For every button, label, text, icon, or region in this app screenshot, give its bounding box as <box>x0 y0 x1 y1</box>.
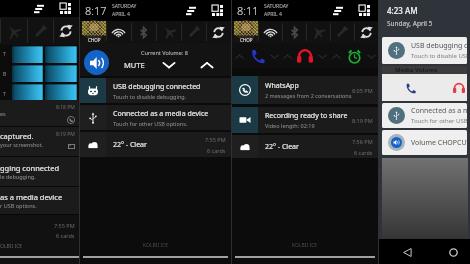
button[interactable]: 22° - Clear <box>80 132 231 157</box>
button[interactable] <box>45 46 77 63</box>
staticText: 7:55 PM <box>54 222 75 229</box>
staticText: USB debugging conn <box>411 41 467 51</box>
button[interactable]: 22° - Clear <box>232 135 378 158</box>
staticText: 7:56 PM <box>352 138 373 145</box>
staticText: r USB options. <box>0 202 37 209</box>
button[interactable]: Sliders <box>182 2 199 19</box>
staticText: your screenshot. <box>0 141 44 148</box>
staticText: as a media device <box>0 192 63 202</box>
staticText: USB debugging connected <box>113 82 201 92</box>
staticText: 8:05 PM <box>352 87 373 94</box>
staticText: Volume CHOPCUT!! <box>411 138 467 148</box>
staticText: OLBII ICE <box>0 243 23 250</box>
button[interactable]: Alarm volume down <box>365 49 378 63</box>
staticText: SATURDAY <box>264 3 289 10</box>
staticText: WhatsApp <box>265 81 299 91</box>
staticText: gging connected <box>0 163 60 173</box>
staticText: APRIL 4 <box>264 11 282 18</box>
staticText: CHOP <box>240 37 253 43</box>
staticText: Touch for other USB options. <box>113 120 188 127</box>
staticText: 4:23 AM <box>387 5 418 16</box>
staticText: MUTE <box>124 60 145 70</box>
button[interactable]: Alarm volume up <box>329 49 343 63</box>
button[interactable]: User profile <box>234 21 258 43</box>
staticText: Touch to disable USB de <box>411 52 467 60</box>
button[interactable]: Quick settings <box>209 2 226 19</box>
button[interactable]: Bluetooth <box>131 21 156 43</box>
button[interactable]: Volume up <box>198 56 216 74</box>
staticText: Touch for other USB opt <box>411 117 467 125</box>
button[interactable]: Headset volume <box>450 79 467 97</box>
button[interactable]: Quick settings <box>356 2 373 19</box>
button[interactable]: captured. <box>0 127 79 157</box>
button[interactable] <box>12 84 43 100</box>
button[interactable]: Sync <box>206 21 231 43</box>
button[interactable]: Connected as a medi <box>382 103 467 128</box>
button[interactable] <box>12 46 43 63</box>
staticText: Connected as a media device <box>113 109 209 119</box>
button[interactable]: Call volume <box>401 79 419 97</box>
button[interactable]: WhatsApp <box>232 76 378 104</box>
staticText: 6 cards <box>354 149 373 156</box>
button[interactable] <box>45 65 77 82</box>
staticText: Touch to disable debugging. <box>113 93 187 100</box>
staticText: CHOP <box>88 37 101 43</box>
staticText: Recording ready to share <box>265 111 348 121</box>
button[interactable]: Headset volume down <box>316 49 329 63</box>
button[interactable]: Sync <box>354 21 378 43</box>
staticText: Video length: 02:19 <box>265 122 315 129</box>
button[interactable]: Quick settings <box>57 0 74 17</box>
button[interactable]: Recording ready to share <box>232 107 378 133</box>
button[interactable] <box>12 65 43 82</box>
button[interactable]: Wi-Fi <box>106 21 131 43</box>
staticText: Connected as a medi <box>411 106 467 116</box>
button[interactable]: Volume <box>84 50 109 75</box>
button[interactable]: 8:18 PM <box>0 100 79 127</box>
staticText: Sunday, April 5 <box>387 19 433 28</box>
staticText: 8:18 PM <box>56 104 75 111</box>
button[interactable]: Alarm volume <box>345 47 363 65</box>
staticText: captured. <box>0 131 34 141</box>
button[interactable]: Flashlight <box>27 17 53 45</box>
button[interactable]: Volume down <box>160 56 178 74</box>
button[interactable] <box>45 84 77 100</box>
button[interactable]: Back <box>398 243 416 261</box>
button[interactable]: User profile <box>82 21 106 43</box>
button[interactable]: Headset volume up <box>280 49 294 63</box>
button[interactable]: Airplane mode <box>306 21 330 43</box>
staticText: 8:11 <box>237 3 259 18</box>
staticText: KOLBII ICE <box>292 242 318 249</box>
button[interactable]: Bluetooth <box>282 21 306 43</box>
staticText: T <box>3 51 6 58</box>
button[interactable]: Connected as a media device <box>80 105 231 130</box>
button[interactable]: Home <box>444 243 462 261</box>
button[interactable]: Call volume down <box>268 49 280 63</box>
staticText: 2 messages from 2 conversations. <box>265 92 352 99</box>
button[interactable]: gging connected <box>0 157 79 187</box>
button[interactable]: Sync <box>53 17 79 45</box>
staticText: Current Volume: 8 <box>141 49 188 56</box>
button[interactable]: Flashlight <box>330 21 354 43</box>
staticText: 6 cards <box>207 147 226 154</box>
button[interactable]: Volume CHOPCUT!! <box>382 130 467 155</box>
staticText: APRIL 4 <box>112 11 130 18</box>
button[interactable]: Sliders <box>30 0 47 17</box>
button[interactable]: Sliders <box>329 2 346 19</box>
button[interactable]: USB debugging conn <box>382 37 467 64</box>
staticText: 7:55 PM <box>205 136 226 143</box>
button[interactable]: USB debugging connected <box>80 78 231 103</box>
staticText: le debugging. <box>0 173 36 180</box>
staticText: 22° - Clear <box>265 142 299 152</box>
button[interactable]: Airplane mode <box>0 17 27 45</box>
button[interactable]: as a media device <box>0 187 79 215</box>
button[interactable]: Headset volume <box>296 47 314 65</box>
staticText: 8:19 PM <box>352 117 373 124</box>
staticText: 6 cards <box>56 232 75 239</box>
button[interactable]: Wi-Fi <box>258 21 282 43</box>
button[interactable]: Flashlight <box>181 21 206 43</box>
button[interactable]: Airplane mode <box>156 21 181 43</box>
staticText: 22° - Clear <box>113 140 147 150</box>
button[interactable]: Call volume up <box>232 49 246 63</box>
staticText: SATURDAY <box>112 3 137 10</box>
button[interactable]: Call volume <box>248 47 266 65</box>
